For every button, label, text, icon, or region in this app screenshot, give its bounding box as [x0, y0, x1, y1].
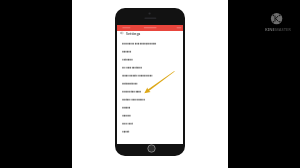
staticText: History and privacy [122, 97, 146, 100]
staticText: Upload [122, 112, 131, 115]
staticText: Video quality preferences [122, 74, 153, 77]
staticText: Offline [122, 106, 131, 109]
staticText: Autoplay [122, 56, 133, 59]
staticText: General [122, 49, 132, 52]
button[interactable]: Back [117, 29, 183, 37]
staticText: Try new features [122, 66, 142, 69]
staticText: Purchases and memberships [122, 40, 157, 43]
staticText: Video quality preferences [122, 73, 153, 76]
staticText: About [122, 129, 130, 132]
staticText: History and privacy [122, 96, 146, 99]
staticText: Live chat [122, 120, 133, 123]
button[interactable]: Offline [117, 102, 183, 110]
staticText: Connected apps [122, 89, 142, 92]
staticText: Notifications [122, 81, 138, 84]
staticText: General [122, 50, 132, 53]
staticText: Autoplay [122, 58, 133, 61]
staticText: Offline [122, 105, 131, 108]
staticText: About [122, 129, 130, 132]
staticText: Autoplay [122, 57, 133, 60]
button[interactable]: Upload [117, 110, 183, 118]
button[interactable]: About [117, 126, 183, 134]
staticText: History and privacy [122, 98, 146, 101]
staticText: Try new features [122, 65, 142, 68]
staticText: KINE [265, 27, 275, 32]
staticText: Offline [122, 105, 131, 108]
staticText: Purchases and memberships [122, 42, 157, 45]
button[interactable]: Video quality preferences [117, 70, 183, 78]
button[interactable]: General [117, 46, 183, 54]
staticText: Settings [126, 31, 141, 36]
button[interactable]: Notifications [117, 78, 183, 86]
staticText: Live chat [122, 121, 133, 124]
staticText: Notifications [122, 82, 138, 85]
staticText: Try new features [122, 64, 142, 67]
button[interactable]: Autoplay [117, 54, 183, 62]
other: Back [120, 31, 124, 35]
staticText: About [122, 128, 130, 131]
staticText: General [122, 48, 132, 51]
other: KineMaster watermark [262, 11, 294, 31]
staticText: Purchases and memberships [122, 41, 157, 44]
staticText: Upload [122, 114, 131, 117]
staticText: Offline [122, 104, 131, 107]
staticText: Upload [122, 113, 131, 116]
staticText: Autoplay [122, 57, 133, 60]
staticText: Connected apps [122, 89, 142, 92]
staticText: General [122, 49, 132, 52]
staticText: Notifications [122, 81, 138, 84]
button[interactable]: History and privacy [117, 94, 183, 102]
staticText: Notifications [122, 80, 138, 83]
button[interactable]: Connected apps [117, 86, 183, 94]
button[interactable]: Purchases and memberships [117, 38, 183, 46]
button[interactable]: Try new features [117, 62, 183, 70]
staticText: Video quality preferences [122, 73, 153, 76]
staticText: Live chat [122, 121, 133, 124]
staticText: Video quality preferences [122, 72, 153, 75]
staticText: Try new features [122, 65, 142, 68]
staticText: MASTER [275, 27, 291, 32]
staticText: Connected apps [122, 90, 142, 93]
staticText: About [122, 130, 130, 133]
staticText: Live chat [122, 122, 133, 125]
button[interactable]: Live chat [117, 118, 183, 126]
staticText: Purchases and memberships [122, 41, 157, 44]
staticText: Connected apps [122, 88, 142, 91]
staticText: History and privacy [122, 97, 146, 100]
staticText: Upload [122, 113, 131, 116]
